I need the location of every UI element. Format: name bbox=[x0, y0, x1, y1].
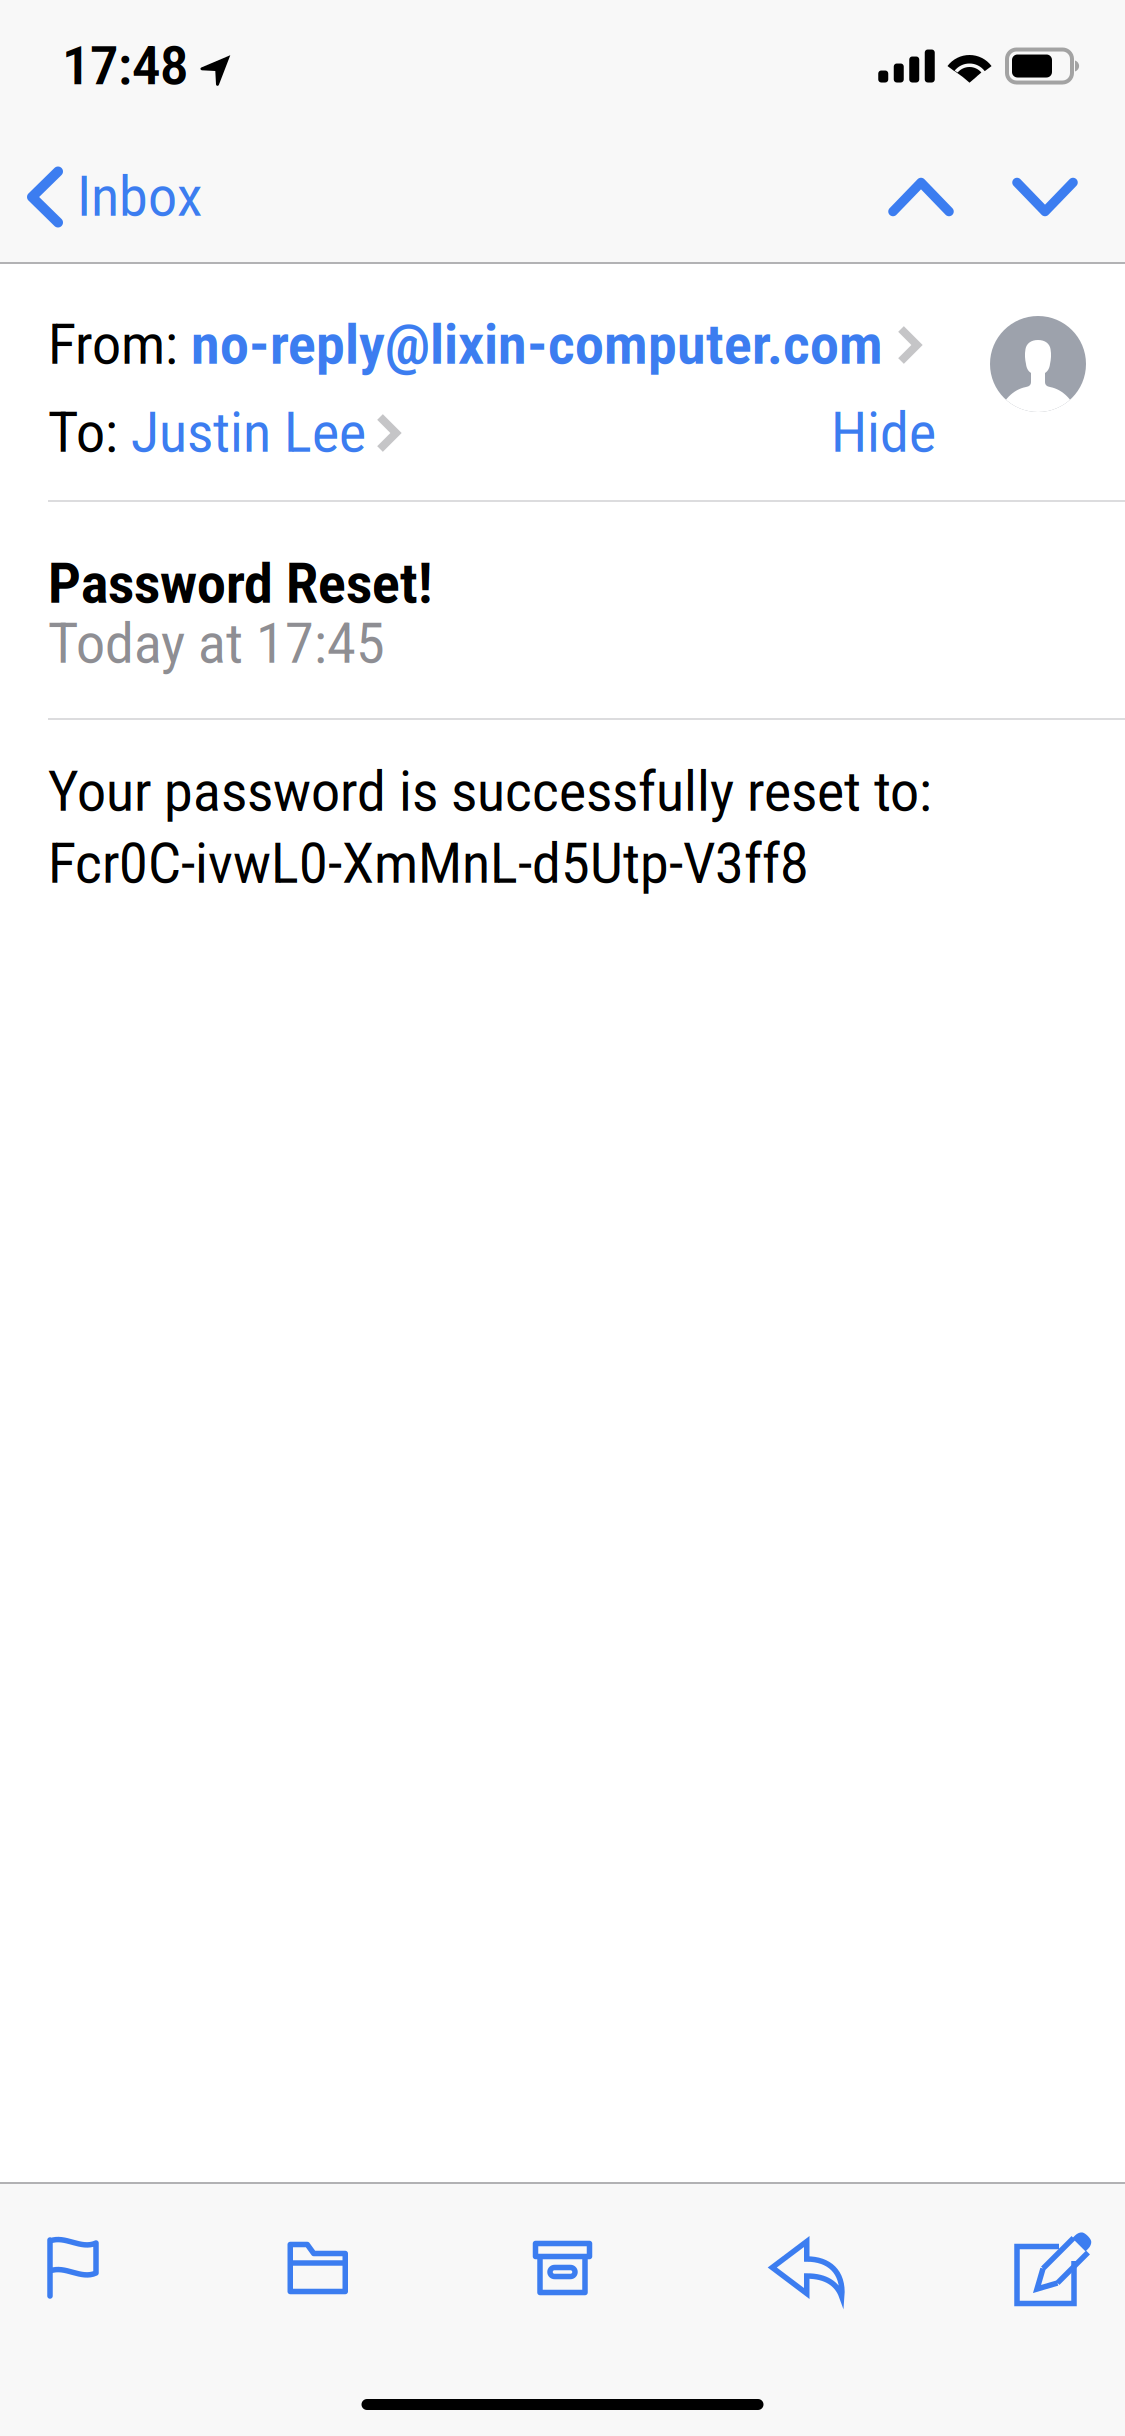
button[interactable]: Hide bbox=[813, 404, 954, 462]
staticText: no-reply@lixin-computer.com bbox=[191, 313, 883, 377]
staticText: Hide bbox=[831, 401, 936, 465]
staticText: Justin Lee bbox=[131, 401, 366, 465]
button[interactable]: Archive bbox=[489, 2212, 635, 2324]
button[interactable]: Next message bbox=[983, 132, 1107, 262]
staticText: Inbox bbox=[77, 165, 202, 229]
button[interactable]: From: bbox=[48, 316, 921, 374]
button[interactable]: To: bbox=[48, 404, 400, 462]
button[interactable]: Flag bbox=[0, 2212, 146, 2324]
button[interactable]: Compose bbox=[979, 2212, 1125, 2324]
staticText: Password Reset! bbox=[48, 552, 432, 616]
staticText: Today at 17:45 bbox=[48, 612, 385, 676]
button[interactable]: Inbox bbox=[0, 132, 226, 262]
staticText: From: bbox=[48, 313, 191, 377]
button[interactable]: Move to folder bbox=[245, 2212, 391, 2324]
staticText: 17:48 bbox=[62, 35, 188, 97]
staticText: Your password is successfully reset to: bbox=[48, 760, 932, 824]
button[interactable]: Previous message bbox=[859, 132, 983, 262]
staticText: To: bbox=[48, 401, 131, 465]
staticText: Fcr0C-ivwL0-XmMnL-d5Utp-V3ff8 bbox=[48, 832, 809, 896]
button[interactable]: Reply bbox=[734, 2212, 880, 2324]
